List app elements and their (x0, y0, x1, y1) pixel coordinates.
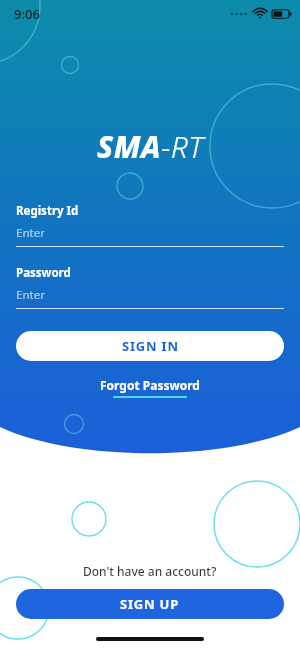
button[interactable]: Enter (16, 287, 284, 309)
button[interactable]: SIGN IN (16, 331, 284, 361)
staticText: Enter (16, 225, 45, 241)
staticText: 9:06 (14, 5, 40, 23)
other: Home indicator (96, 637, 204, 641)
button[interactable]: Forgot Password (94, 375, 206, 400)
staticText: Enter (16, 287, 45, 303)
staticText: Password (16, 265, 71, 281)
staticText: -RT (161, 126, 204, 167)
staticText: SIGN IN (122, 337, 179, 355)
staticText: Registry Id (16, 203, 79, 219)
staticText: Don't have an account? (83, 563, 217, 579)
button[interactable]: SIGN UP (16, 589, 284, 619)
staticText: SIGN UP (120, 595, 180, 613)
staticText: Forgot Password (100, 377, 200, 393)
staticText: SMA (97, 126, 161, 167)
button[interactable]: Enter (16, 225, 284, 247)
